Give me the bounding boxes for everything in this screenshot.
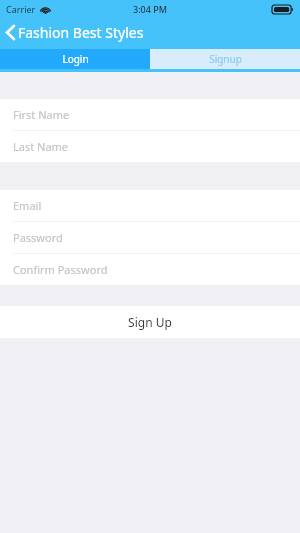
staticText: Sign Up [128,314,172,330]
staticText: Signup [209,52,242,66]
button[interactable]: Sign Up [0,306,300,338]
button[interactable]: Password [0,222,300,253]
other: Back [6,25,15,40]
staticText: 3:04 PM [133,3,167,15]
button[interactable]: Email [0,190,300,221]
staticText: Confirm Password [13,262,108,277]
staticText: Password [13,230,63,245]
staticText: First Name [13,107,70,122]
button[interactable]: Signup [150,49,300,69]
button[interactable]: Login [0,49,150,69]
button[interactable]: Back [0,19,152,46]
staticText: Email [13,198,42,213]
button[interactable]: Confirm Password [0,254,300,285]
staticText: Carrier [6,3,36,15]
staticText: Login [62,52,89,66]
button[interactable]: First Name [0,99,300,130]
staticText: Fashion Best Styles [18,23,144,42]
button[interactable]: Last Name [0,131,300,162]
staticText: Last Name [13,139,69,154]
